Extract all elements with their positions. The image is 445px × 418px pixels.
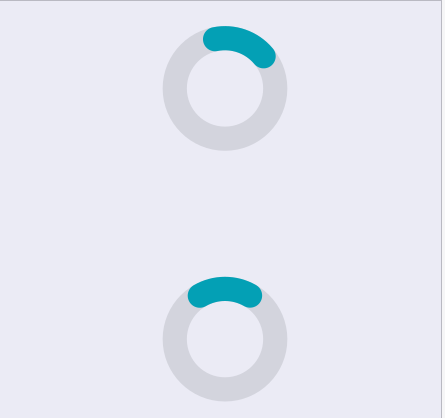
progressIndicator: Loading [163,26,287,151]
progressIndicator: Loading [163,277,287,401]
